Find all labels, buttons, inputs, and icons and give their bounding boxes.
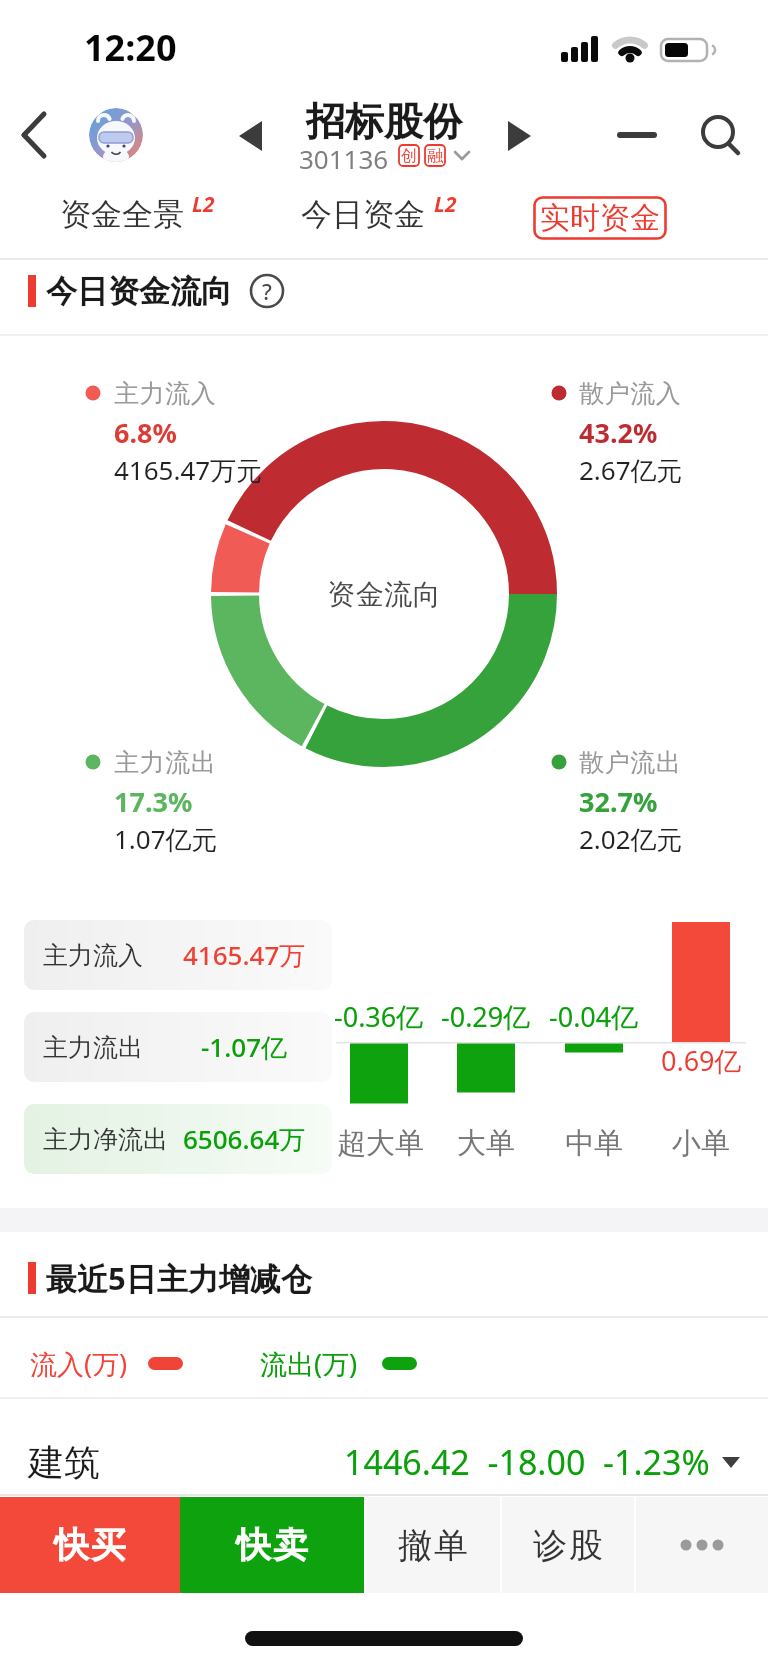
button[interactable] bbox=[232, 116, 272, 156]
staticText: 4165.47万元 bbox=[114, 452, 263, 488]
staticText: 301136 bbox=[299, 141, 389, 169]
staticText: 快卖 bbox=[235, 1523, 309, 1567]
button[interactable]: 主力流出 bbox=[24, 1012, 332, 1082]
button[interactable] bbox=[608, 110, 664, 160]
staticText: 大单 bbox=[457, 1125, 515, 1162]
staticText: ? bbox=[262, 276, 272, 306]
staticText: L2 bbox=[192, 190, 215, 218]
staticText: 1446.42 -18.00 -1.23% bbox=[344, 1439, 710, 1485]
staticText: 流入(万) bbox=[30, 1345, 128, 1382]
staticText: -0.04亿 bbox=[549, 998, 639, 1035]
button[interactable]: 实时资金 bbox=[533, 196, 667, 240]
button[interactable] bbox=[10, 105, 60, 165]
staticText: 6506.64万 bbox=[183, 1121, 306, 1157]
staticText: 创 bbox=[401, 146, 417, 166]
button[interactable]: 快买 bbox=[0, 1497, 180, 1593]
staticText: 资金流向 bbox=[327, 577, 441, 612]
staticText: 32.7% bbox=[579, 783, 658, 820]
staticText: 诊股 bbox=[532, 1524, 604, 1567]
staticText: 散户流出 bbox=[579, 747, 681, 778]
staticText: 建筑 bbox=[28, 1440, 100, 1485]
staticText: 撤单 bbox=[397, 1524, 469, 1567]
button[interactable]: 诊股 bbox=[502, 1497, 634, 1593]
button[interactable]: 快卖 bbox=[180, 1497, 364, 1593]
button[interactable]: 今日资金 bbox=[281, 190, 481, 246]
staticText: 43.2% bbox=[579, 414, 658, 451]
button[interactable]: ? bbox=[249, 273, 285, 309]
staticText: 实时资金 bbox=[540, 199, 660, 237]
staticText: 17.3% bbox=[114, 783, 193, 820]
staticText: L2 bbox=[434, 190, 457, 218]
staticText: 主力流入 bbox=[114, 378, 216, 409]
staticText: 1.07亿元 bbox=[114, 821, 218, 857]
staticText: -0.29亿 bbox=[441, 998, 531, 1035]
staticText: 0.69亿 bbox=[661, 1042, 742, 1079]
staticText: 融 bbox=[427, 146, 443, 166]
staticText: 中单 bbox=[565, 1125, 623, 1162]
staticText: 12:20 bbox=[84, 23, 177, 72]
staticText: 快买 bbox=[53, 1523, 127, 1567]
staticText: 4165.47万 bbox=[183, 937, 306, 973]
button[interactable] bbox=[498, 116, 538, 156]
staticText: 超大单 bbox=[337, 1125, 424, 1162]
staticText: 主力净流出 bbox=[43, 1124, 168, 1155]
staticText: -1.07亿 bbox=[201, 1029, 288, 1065]
staticText: 6.8% bbox=[114, 414, 177, 451]
button[interactable]: 建筑 bbox=[0, 1414, 768, 1494]
button[interactable] bbox=[636, 1497, 768, 1593]
button[interactable] bbox=[696, 109, 748, 161]
staticText: 主力流入 bbox=[43, 940, 143, 971]
staticText: 散户流入 bbox=[579, 378, 681, 409]
staticText: 资金全景 bbox=[60, 195, 184, 234]
button[interactable]: 主力净流出 bbox=[24, 1104, 332, 1174]
staticText: 今日资金流向 bbox=[46, 272, 232, 311]
staticText: 2.02亿元 bbox=[579, 821, 683, 857]
staticText: 今日资金 bbox=[301, 195, 425, 234]
staticText: 招标股份 bbox=[306, 97, 462, 146]
staticText: 2.67亿元 bbox=[579, 452, 683, 488]
staticText: 最近5日主力增减仓 bbox=[46, 1257, 312, 1299]
staticText: 主力流出 bbox=[114, 747, 216, 778]
staticText: -0.36亿 bbox=[334, 998, 424, 1035]
button[interactable]: 撤单 bbox=[366, 1497, 500, 1593]
button[interactable] bbox=[89, 108, 143, 162]
button[interactable]: 资金全景 bbox=[40, 190, 240, 246]
staticText: 流出(万) bbox=[260, 1345, 358, 1382]
staticText: 主力流出 bbox=[43, 1032, 143, 1063]
staticText: 小单 bbox=[672, 1125, 730, 1162]
button[interactable]: 主力流入 bbox=[24, 920, 332, 990]
